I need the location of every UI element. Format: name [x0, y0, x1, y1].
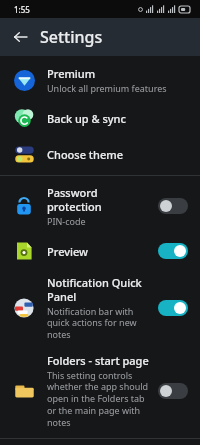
staticText: 1:55: [14, 4, 30, 15]
button[interactable]: Toggle off: [158, 383, 188, 399]
button[interactable]: Preview: [0, 233, 200, 269]
button[interactable]: Back: [6, 23, 34, 51]
button[interactable]: Toggle on: [158, 300, 188, 316]
staticText: Notification Quick Panel: [47, 275, 150, 304]
staticText: PIN-code: [47, 215, 86, 227]
button[interactable]: Folders - start page: [0, 347, 200, 435]
staticText: Back up & sync: [47, 111, 126, 126]
staticText: Unlock all premium features: [47, 82, 167, 94]
button[interactable]: Toggle on: [158, 243, 188, 259]
button[interactable]: Password protection: [0, 179, 200, 233]
button[interactable]: Back up & sync: [0, 100, 200, 136]
button[interactable]: Notification Quick Panel: [0, 269, 200, 347]
staticText: Preview: [47, 244, 88, 259]
staticText: Password protection: [47, 185, 150, 214]
staticText: This setting controls whether the app sh…: [47, 369, 150, 429]
staticText: Folders - start page: [47, 353, 149, 368]
button[interactable]: Premium: [0, 60, 200, 100]
staticText: Premium: [47, 66, 96, 81]
staticText: Choose theme: [47, 147, 123, 162]
button[interactable]: Toggle off: [158, 198, 188, 214]
staticText: Settings: [40, 26, 103, 48]
button[interactable]: Choose theme: [0, 136, 200, 172]
staticText: Notification bar with quick actions for …: [47, 305, 150, 341]
